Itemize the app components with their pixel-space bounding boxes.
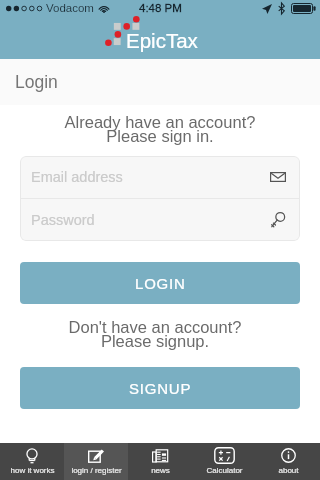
button[interactable]: how it works <box>0 443 64 480</box>
staticText: EpicTax <box>126 29 198 52</box>
staticText: about <box>278 466 299 475</box>
staticText: news <box>151 466 170 475</box>
button[interactable]: Calculator <box>192 443 256 480</box>
other: Password <box>267 209 289 231</box>
staticText: 4:48 PM <box>139 2 182 15</box>
staticText: Don't have an account? Please signup. <box>0 318 315 351</box>
staticText: Already have an account? Please sign in. <box>0 113 320 146</box>
button[interactable]: LOGIN <box>20 262 300 304</box>
button[interactable]: SIGNUP <box>20 367 300 409</box>
button[interactable]: login / register <box>64 443 128 480</box>
staticText: Vodacom <box>46 2 94 15</box>
staticText: Email address <box>31 169 267 185</box>
button[interactable]: about <box>256 443 320 480</box>
button[interactable]: news <box>128 443 192 480</box>
staticText: SIGNUP <box>129 380 192 397</box>
button[interactable]: Email address <box>20 156 300 198</box>
other: Email <box>267 166 289 188</box>
staticText: LOGIN <box>135 275 186 292</box>
staticText: login / register <box>71 466 122 475</box>
staticText: Login <box>15 72 58 92</box>
staticText: how it works <box>10 466 55 475</box>
button[interactable]: Password <box>20 199 300 241</box>
staticText: Password <box>31 212 267 228</box>
staticText: Calculator <box>206 466 243 475</box>
